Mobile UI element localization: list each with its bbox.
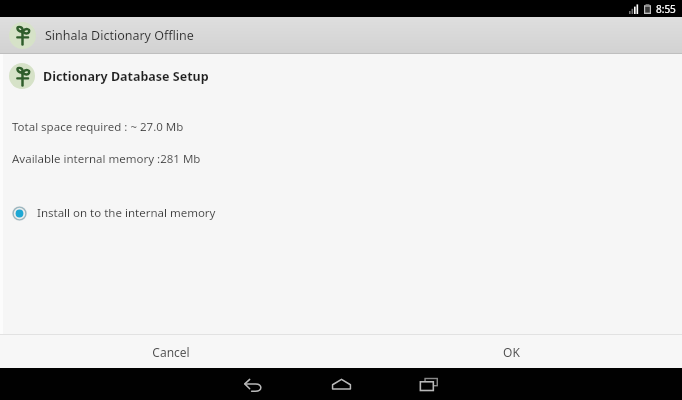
- staticText: Available internal memory :281 Mb: [12, 151, 201, 167]
- staticText: Dictionary Database Setup: [43, 68, 209, 85]
- button[interactable]: Home: [297, 368, 385, 400]
- staticText: Cancel: [152, 344, 190, 360]
- staticText: OK: [503, 344, 520, 360]
- staticText: Sinhala Dictionary Offline: [45, 27, 194, 44]
- staticText: 8:55: [656, 2, 676, 16]
- staticText: Install on to the internal memory: [37, 205, 216, 221]
- button[interactable]: Back: [209, 368, 297, 400]
- button[interactable]: OK: [341, 335, 682, 368]
- button[interactable]: Install on to the internal memory: [0, 201, 682, 225]
- button[interactable]: Cancel: [0, 335, 341, 368]
- staticText: Total space required : ~ 27.0 Mb: [12, 119, 184, 135]
- button[interactable]: Recent apps: [385, 368, 473, 400]
